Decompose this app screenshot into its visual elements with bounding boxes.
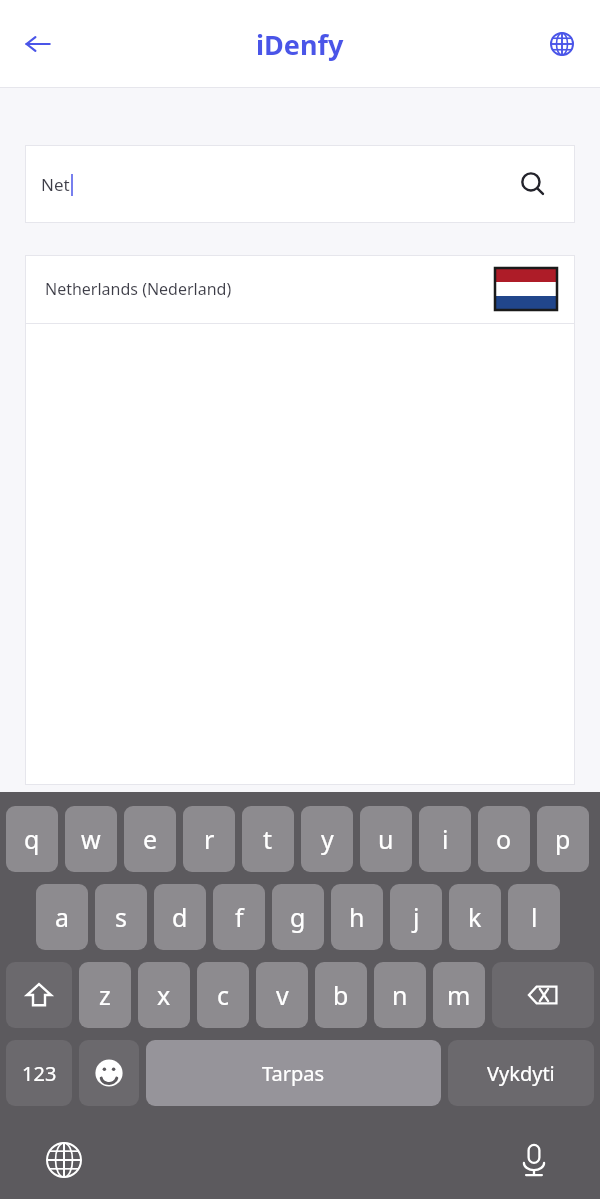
- staticText: Netherlands (Nederland): [45, 278, 495, 300]
- staticText: i: [442, 822, 449, 856]
- staticText: r: [204, 822, 215, 856]
- button[interactable]: Shift: [6, 962, 72, 1028]
- button[interactable]: Search: [513, 164, 553, 204]
- button[interactable]: y: [301, 806, 353, 872]
- button[interactable]: l: [508, 884, 560, 950]
- button[interactable]: Vykdyti: [448, 1040, 594, 1106]
- button[interactable]: Language: [538, 20, 586, 68]
- staticText: Tarpas: [262, 1060, 325, 1087]
- staticText: d: [172, 900, 188, 934]
- button[interactable]: g: [272, 884, 324, 950]
- staticText: c: [217, 978, 230, 1012]
- button[interactable]: z: [79, 962, 131, 1028]
- button[interactable]: Change keyboard language: [40, 1136, 88, 1184]
- staticText: iDenfy: [256, 26, 344, 63]
- staticText: v: [276, 978, 289, 1012]
- staticText: j: [413, 900, 420, 934]
- button[interactable]: Backspace: [492, 962, 594, 1028]
- staticText: s: [115, 900, 127, 934]
- button[interactable]: j: [390, 884, 442, 950]
- button[interactable]: s: [95, 884, 147, 950]
- staticText: h: [349, 900, 365, 934]
- staticText: m: [447, 978, 471, 1012]
- button[interactable]: d: [154, 884, 206, 950]
- button[interactable]: n: [374, 962, 426, 1028]
- staticText: a: [55, 900, 70, 934]
- staticText: k: [468, 900, 482, 934]
- button[interactable]: w: [65, 806, 117, 872]
- staticText: t: [263, 822, 273, 856]
- button[interactable]: x: [138, 962, 190, 1028]
- button[interactable]: Netherlands (Nederland): [25, 255, 575, 323]
- staticText: 123: [22, 1060, 57, 1087]
- button[interactable]: Emoji: [79, 1040, 139, 1106]
- button[interactable]: k: [449, 884, 501, 950]
- button[interactable]: m: [433, 962, 485, 1028]
- staticText: Net: [41, 173, 70, 196]
- button[interactable]: c: [197, 962, 249, 1028]
- button[interactable]: a: [36, 884, 88, 950]
- button[interactable]: i: [419, 806, 471, 872]
- button[interactable]: Tarpas: [146, 1040, 441, 1106]
- staticText: x: [157, 978, 171, 1012]
- button[interactable]: q: [6, 806, 58, 872]
- button[interactable]: h: [331, 884, 383, 950]
- button[interactable]: v: [256, 962, 308, 1028]
- staticText: b: [333, 978, 349, 1012]
- button[interactable]: Voice input: [510, 1136, 558, 1184]
- button[interactable]: t: [242, 806, 294, 872]
- staticText: q: [24, 822, 40, 856]
- button[interactable]: 123: [6, 1040, 72, 1106]
- button[interactable]: b: [315, 962, 367, 1028]
- button[interactable]: e: [124, 806, 176, 872]
- button[interactable]: r: [183, 806, 235, 872]
- staticText: w: [81, 822, 101, 856]
- button[interactable]: o: [478, 806, 530, 872]
- staticText: u: [378, 822, 394, 856]
- button[interactable]: Back: [14, 20, 62, 68]
- button[interactable]: p: [537, 806, 589, 872]
- staticText: e: [143, 822, 158, 856]
- button[interactable]: f: [213, 884, 265, 950]
- staticText: g: [290, 900, 306, 934]
- staticText: z: [99, 978, 111, 1012]
- staticText: p: [555, 822, 571, 856]
- staticText: l: [531, 900, 538, 934]
- staticText: y: [321, 822, 334, 856]
- staticText: f: [235, 900, 244, 934]
- button[interactable]: Net: [25, 145, 575, 223]
- staticText: n: [392, 978, 408, 1012]
- button[interactable]: u: [360, 806, 412, 872]
- staticText: Vykdyti: [487, 1060, 555, 1087]
- staticText: o: [496, 822, 512, 856]
